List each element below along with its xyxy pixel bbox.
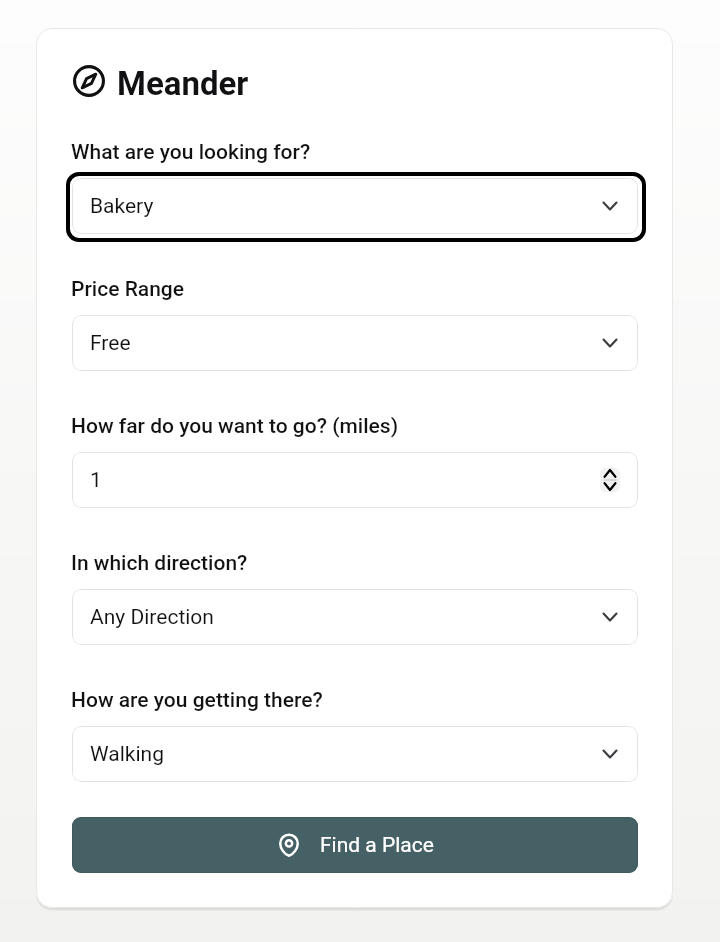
staticText: What are you looking for?	[71, 140, 311, 165]
staticText: Find a Place	[320, 833, 434, 858]
button[interactable]: Walking	[72, 726, 638, 782]
button[interactable]: Free	[72, 315, 638, 371]
staticText: How are you getting there?	[71, 688, 323, 713]
staticText: Walking	[90, 742, 164, 767]
staticText: Price Range	[71, 277, 185, 302]
staticText: Meander	[117, 64, 249, 103]
staticText: Free	[90, 331, 131, 356]
button[interactable]: Any Direction	[72, 589, 638, 645]
button[interactable]: 1	[72, 452, 638, 508]
other: Meander logo	[73, 65, 105, 97]
button[interactable]: Decrease distance	[600, 480, 620, 492]
button[interactable]: Meander logo	[69, 61, 289, 101]
staticText: Any Direction	[90, 605, 214, 630]
button[interactable]: Bakery	[72, 178, 638, 234]
staticText: How far do you want to go? (miles)	[71, 414, 399, 439]
staticText: Bakery	[90, 194, 154, 219]
button[interactable]: Find a Place	[72, 817, 638, 873]
button[interactable]: Increase distance	[600, 468, 620, 480]
staticText: 1	[90, 468, 102, 493]
staticText: In which direction?	[71, 551, 248, 576]
